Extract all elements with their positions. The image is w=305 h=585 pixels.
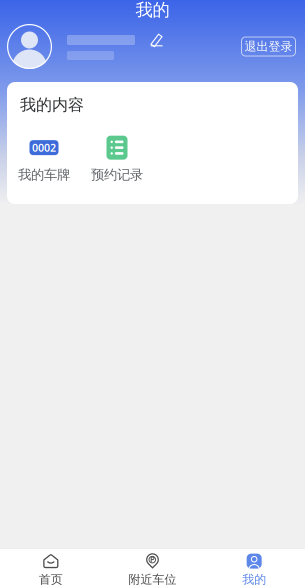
staticText: 我的 [242,572,266,585]
button[interactable]: 首页 [0,546,102,585]
staticText: 附近车位 [128,572,176,585]
staticText: 我的车牌 [18,167,70,183]
staticText: 我的 [135,0,169,21]
button[interactable]: 预约记录 [93,136,141,183]
button[interactable]: 附近车位 [102,546,203,585]
button[interactable]: 我的 [203,546,305,585]
button[interactable]: 0002 [20,136,68,183]
staticText: 退出登录 [244,39,292,54]
button[interactable]: 退出登录 [241,36,296,56]
staticText: 我的内容 [20,95,84,115]
staticText: 预约记录 [91,167,143,183]
staticText: 0002 [32,141,56,155]
staticText: 首页 [39,572,63,585]
